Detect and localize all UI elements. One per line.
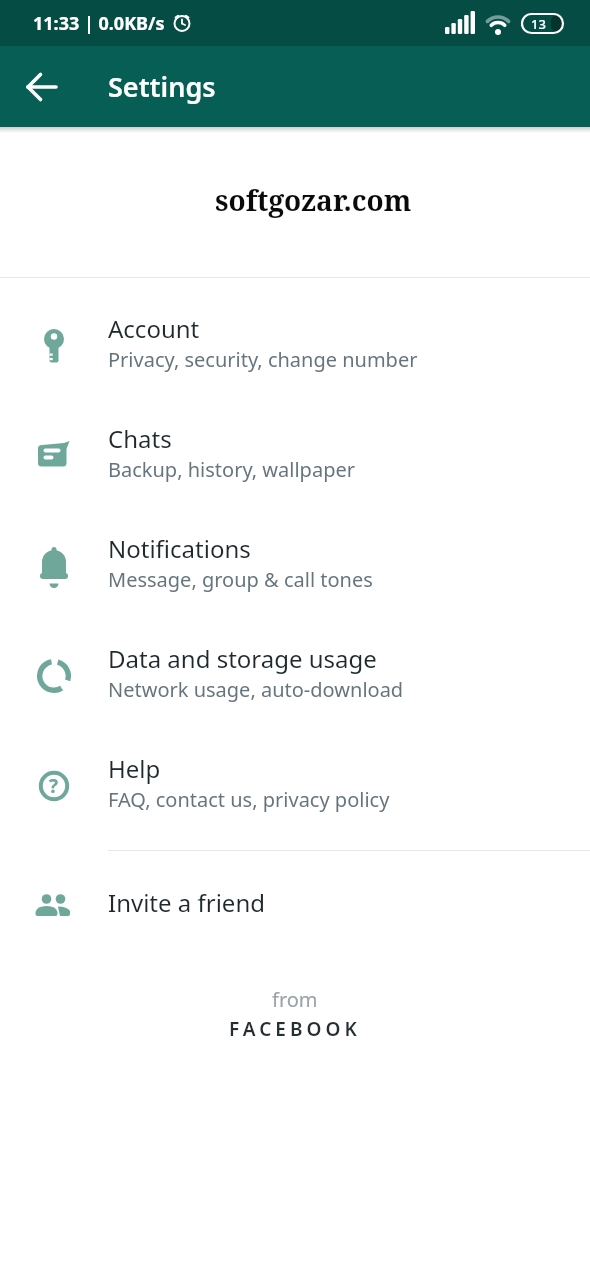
staticText: FACEBOOK bbox=[229, 1016, 361, 1042]
staticText: 13 bbox=[531, 15, 546, 33]
button[interactable] bbox=[24, 69, 60, 105]
button[interactable]: Account bbox=[0, 291, 590, 401]
staticText: Chats bbox=[108, 422, 172, 455]
button[interactable]: Data and storage usage bbox=[0, 621, 590, 731]
staticText: Message, group & call tones bbox=[108, 566, 373, 593]
button[interactable]: Chats bbox=[0, 401, 590, 511]
button[interactable]: Invite a friend bbox=[0, 851, 590, 961]
staticText: Settings bbox=[108, 68, 216, 105]
staticText: Privacy, security, change number bbox=[108, 346, 418, 373]
staticText: Notifications bbox=[108, 532, 251, 565]
staticText: Network usage, auto-download bbox=[108, 676, 404, 703]
staticText: Data and storage usage bbox=[108, 642, 377, 675]
staticText: from bbox=[272, 986, 318, 1013]
button[interactable]: Notifications bbox=[0, 511, 590, 621]
staticText: 11:33 | 0.0KB/s bbox=[33, 11, 165, 36]
staticText: ? bbox=[49, 773, 59, 799]
staticText: Backup, history, wallpaper bbox=[108, 456, 355, 483]
staticText: softgozar.com bbox=[215, 181, 412, 219]
staticText: FAQ, contact us, privacy policy bbox=[108, 786, 390, 813]
staticText: Invite a friend bbox=[108, 886, 265, 919]
staticText: Help bbox=[108, 752, 161, 785]
button[interactable]: ? bbox=[0, 731, 590, 841]
staticText: Account bbox=[108, 312, 200, 345]
